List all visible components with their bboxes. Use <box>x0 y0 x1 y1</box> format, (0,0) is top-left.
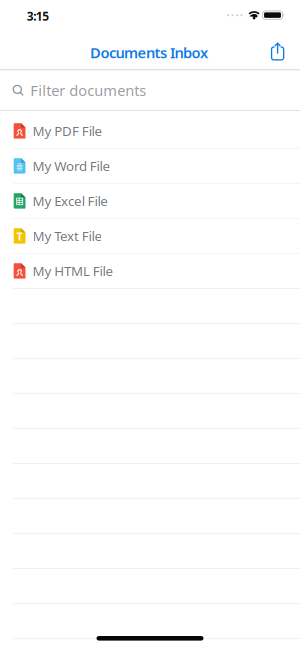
button[interactable]: My PDF File <box>0 114 300 149</box>
staticText: Documents Inbox <box>90 43 208 62</box>
staticText: My Excel File <box>32 192 108 210</box>
staticText: My PDF File <box>32 122 102 140</box>
button[interactable]: My Excel File <box>0 184 300 219</box>
staticText: Filter documents <box>30 81 146 100</box>
staticText: My HTML File <box>32 262 113 280</box>
button[interactable]: My Word File <box>0 149 300 184</box>
button[interactable]: My HTML File <box>0 254 300 289</box>
staticText: T <box>17 229 23 243</box>
button[interactable]: Filter documents <box>0 70 300 110</box>
staticText: My Word File <box>32 157 110 175</box>
button[interactable]: Share <box>265 36 290 66</box>
staticText: 3:15 <box>27 8 49 24</box>
staticText: My Text File <box>32 227 102 245</box>
button[interactable]: T <box>0 219 300 254</box>
